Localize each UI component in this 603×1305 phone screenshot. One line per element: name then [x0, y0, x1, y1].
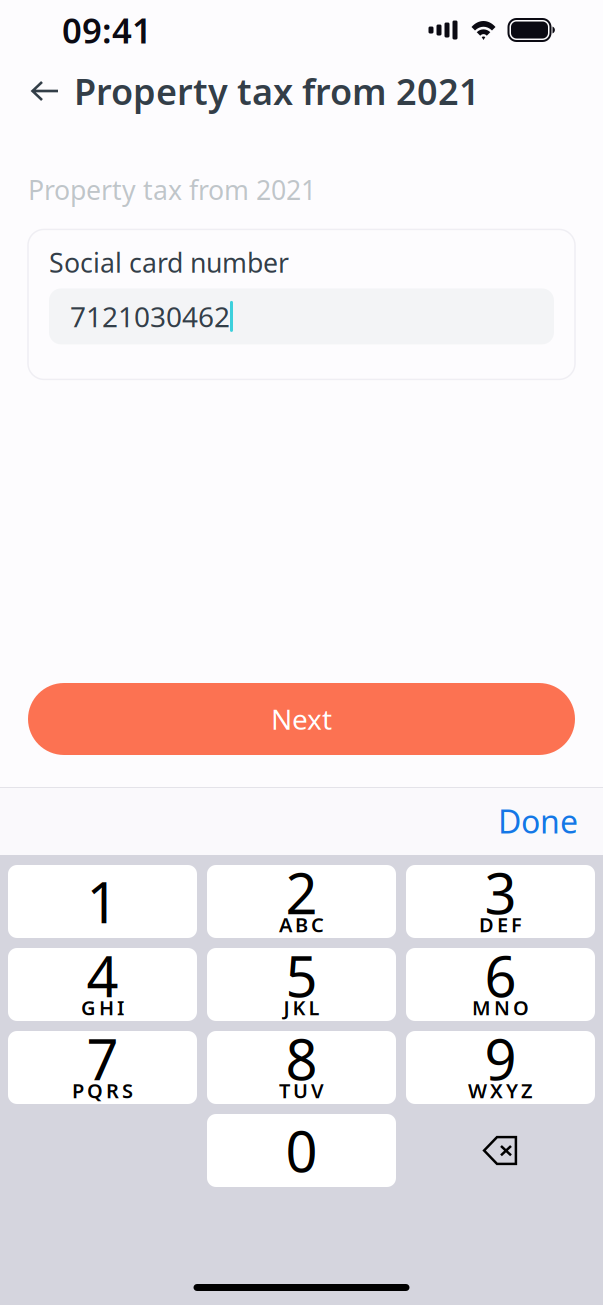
staticText: P Q R S	[72, 1077, 133, 1104]
staticText: 6	[484, 938, 516, 1013]
button[interactable]: Back	[16, 67, 74, 115]
staticText: 7	[86, 1021, 118, 1096]
staticText: 5	[285, 938, 317, 1013]
staticText: 1	[86, 864, 118, 939]
button[interactable]: Delete	[406, 1114, 595, 1187]
button[interactable]: 1	[8, 865, 197, 938]
staticText: G H I	[81, 994, 124, 1021]
staticText: 7121030462	[70, 298, 230, 335]
staticText: 9	[484, 1021, 516, 1096]
staticText: Property tax from 2021	[28, 172, 316, 207]
staticText: 4	[86, 938, 118, 1013]
button[interactable]: 9	[406, 1031, 595, 1104]
button[interactable]: Done	[473, 788, 603, 854]
button[interactable]: 4	[8, 948, 197, 1021]
button[interactable]: 3	[406, 865, 595, 938]
button[interactable]: 5	[207, 948, 396, 1021]
button[interactable]: 7	[8, 1031, 197, 1104]
staticText: 3	[484, 855, 516, 930]
staticText: T U V	[279, 1077, 324, 1104]
staticText: 8	[285, 1021, 317, 1096]
button[interactable]: 6	[406, 948, 595, 1021]
staticText: W X Y Z	[468, 1077, 533, 1104]
button[interactable]: 8	[207, 1031, 396, 1104]
staticText: Done	[498, 800, 578, 842]
staticText: J K L	[283, 994, 319, 1021]
staticText: Property tax from 2021	[74, 67, 480, 115]
staticText: D E F	[479, 911, 522, 938]
staticText: M N O	[472, 994, 529, 1021]
button[interactable]: 2	[207, 865, 396, 938]
staticText: Next	[271, 700, 332, 738]
staticText: 2	[285, 855, 317, 930]
button[interactable]: 0	[207, 1114, 396, 1187]
staticText: 0	[285, 1113, 317, 1188]
staticText: A B C	[279, 911, 324, 938]
staticText: Social card number	[49, 245, 289, 280]
staticText: 09:41	[62, 7, 152, 53]
button[interactable]: Next	[28, 683, 575, 755]
